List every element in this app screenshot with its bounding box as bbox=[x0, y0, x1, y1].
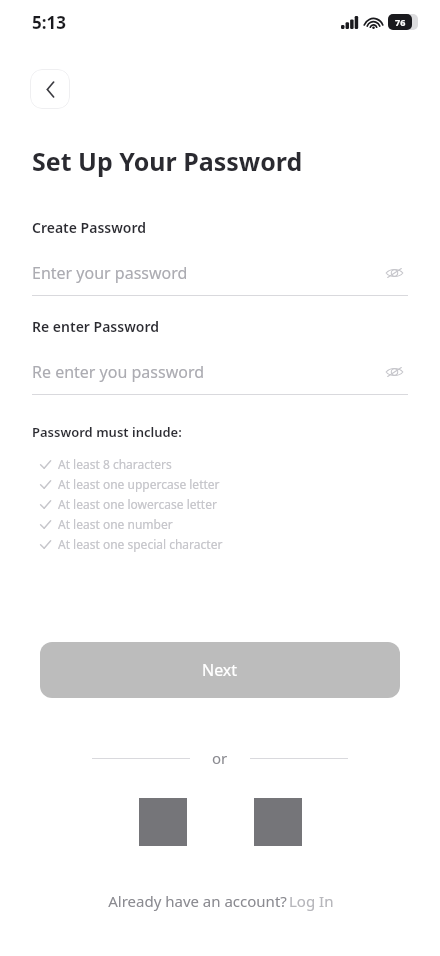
button[interactable]: Enter your password bbox=[32, 259, 408, 287]
staticText: At least one lowercase letter bbox=[58, 496, 217, 512]
staticText: 5:13 bbox=[32, 11, 66, 34]
staticText: Password must include: bbox=[32, 423, 182, 441]
staticText: At least 8 characters bbox=[58, 456, 172, 472]
button[interactable]: Show password bbox=[380, 259, 408, 287]
staticText: At least one special character bbox=[58, 536, 223, 552]
staticText: Already have an account? bbox=[106, 891, 289, 911]
button[interactable]: Log In bbox=[289, 891, 334, 911]
staticText: Create Password bbox=[32, 218, 147, 237]
button[interactable]: Re enter you password bbox=[32, 358, 408, 386]
button[interactable]: Next bbox=[40, 642, 400, 698]
staticText: 76 bbox=[395, 16, 406, 28]
staticText: Re enter Password bbox=[32, 317, 159, 336]
staticText: Re enter you password bbox=[32, 361, 380, 383]
staticText: At least one uppercase letter bbox=[58, 476, 220, 492]
staticText: Set Up Your Password bbox=[32, 144, 303, 178]
staticText: Log In bbox=[289, 891, 334, 911]
button[interactable]: Show password bbox=[380, 358, 408, 386]
button[interactable]: Back bbox=[30, 69, 70, 109]
staticText: Enter your password bbox=[32, 262, 380, 284]
staticText: or bbox=[212, 748, 228, 768]
staticText: At least one number bbox=[58, 516, 173, 532]
staticText: Next bbox=[202, 659, 238, 681]
